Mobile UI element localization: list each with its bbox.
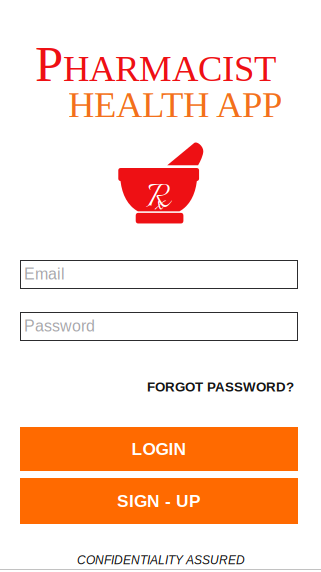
staticText: HEALTH APP [68,85,282,125]
staticText: R [146,174,170,224]
staticText: SIGN - UP [117,491,201,511]
staticText: Password [24,317,95,335]
staticText: LOGIN [131,439,186,459]
staticText: FORGOT PASSWORD? [147,380,294,394]
button[interactable]: FORGOT PASSWORD? [140,379,294,395]
button[interactable]: LOGIN [20,427,298,471]
staticText: HARMACIST [63,48,276,89]
staticText: CONFIDENTIALITY ASSURED [77,553,245,567]
staticText: P [35,36,63,92]
staticText: x [155,185,164,223]
button[interactable]: SIGN - UP [20,478,298,524]
staticText: Email [24,265,65,283]
